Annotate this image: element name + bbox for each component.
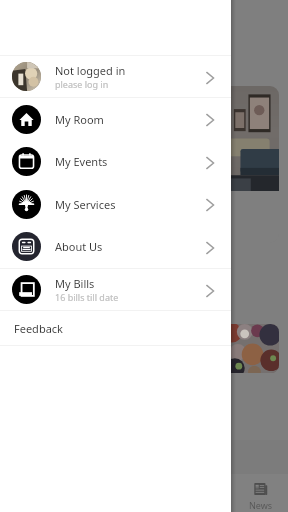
staticText: My Events — [55, 154, 108, 169]
staticText: About Us — [55, 239, 103, 254]
button[interactable]: Feedback — [0, 311, 231, 345]
button[interactable]: News — [249, 481, 273, 511]
button[interactable]: About — [0, 225, 231, 268]
button[interactable]: Home — [0, 98, 231, 140]
button[interactable]: Bills — [0, 269, 231, 310]
button[interactable]: Not logged in — [0, 56, 231, 97]
staticText: My Services — [55, 197, 116, 212]
staticText: My Bills — [55, 276, 95, 291]
staticText: please log in — [55, 78, 109, 90]
other: Bills — [12, 275, 41, 304]
staticText: My Room — [55, 112, 104, 127]
staticText: Not logged in — [55, 63, 126, 78]
other: Home — [12, 105, 41, 134]
staticText: Feedback — [14, 321, 63, 336]
other: Events — [12, 147, 41, 176]
other: About — [12, 232, 41, 261]
button[interactable]: Services — [0, 183, 231, 225]
other: News — [253, 481, 269, 497]
button[interactable]: Events — [0, 140, 231, 183]
other: Services — [12, 190, 41, 219]
staticText: News — [249, 499, 273, 511]
staticText: 16 bills till date — [55, 291, 119, 303]
